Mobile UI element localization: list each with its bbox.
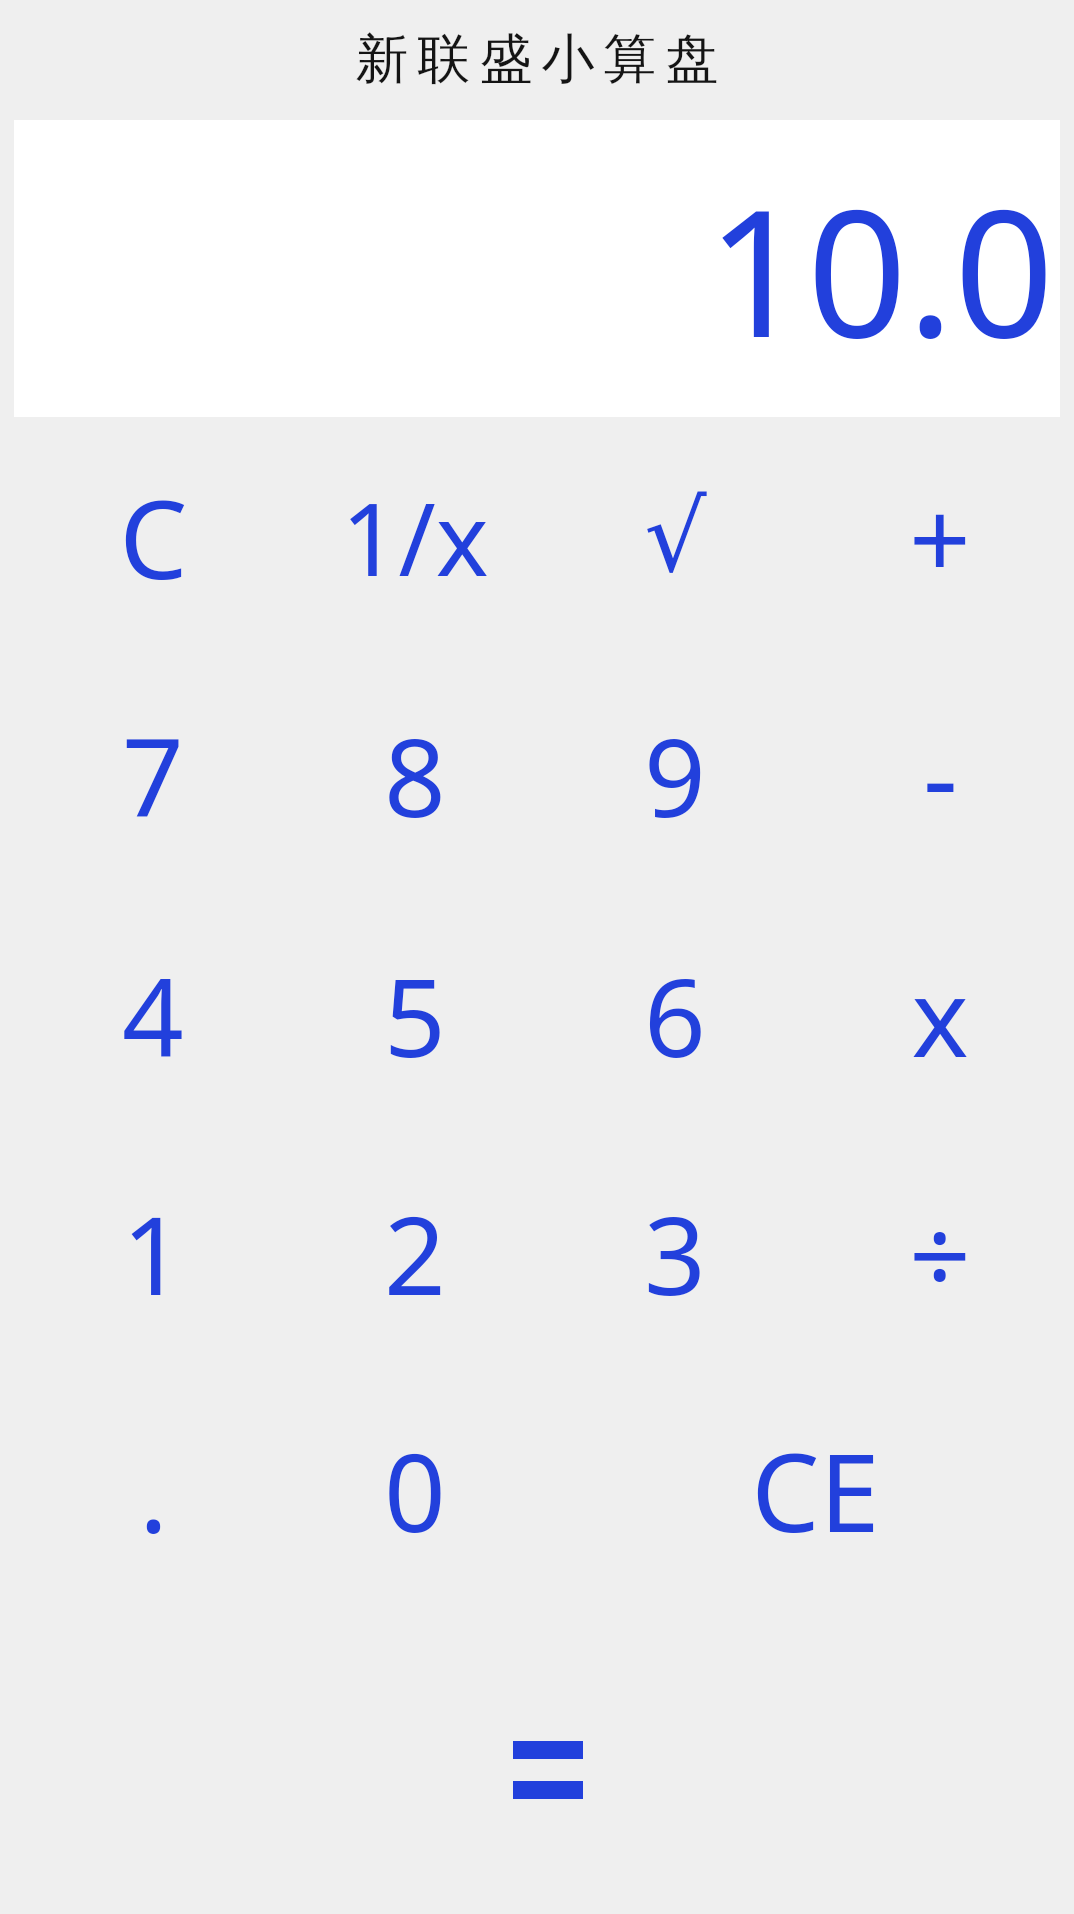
staticText: ÷ (909, 1180, 971, 1327)
staticText: . (139, 1417, 168, 1564)
staticText: 7 (122, 702, 184, 849)
button[interactable]: x (835, 915, 1045, 1115)
staticText: √ (644, 480, 707, 594)
staticText: 3 (644, 1180, 706, 1327)
button[interactable]: CE (700, 1390, 930, 1590)
button[interactable]: - (835, 675, 1045, 875)
staticText: CE (751, 1417, 880, 1564)
staticText: - (923, 702, 958, 849)
button[interactable]: Display (14, 120, 1060, 417)
button[interactable]: 6 (570, 915, 780, 1115)
button[interactable]: 4 (48, 915, 258, 1115)
button[interactable]: 9 (570, 675, 780, 875)
button[interactable]: ÷ (835, 1153, 1045, 1353)
button[interactable]: Equals (448, 1675, 648, 1865)
button[interactable]: 5 (310, 915, 520, 1115)
button[interactable]: 8 (310, 675, 520, 875)
button[interactable]: √ (570, 437, 780, 637)
button[interactable]: 7 (48, 675, 258, 875)
staticText: + (909, 464, 971, 611)
staticText: 5 (384, 942, 446, 1089)
button[interactable]: 3 (570, 1153, 780, 1353)
button[interactable]: 1 (48, 1153, 258, 1353)
staticText: 0 (384, 1417, 446, 1564)
button[interactable]: 0 (310, 1390, 520, 1590)
staticText: 6 (644, 942, 706, 1089)
button[interactable]: . (48, 1390, 258, 1590)
staticText: C (119, 464, 188, 611)
staticText: 8 (384, 702, 446, 849)
staticText: 1 (122, 1180, 184, 1327)
staticText: 10.0 (706, 150, 1054, 388)
staticText: 1/x (341, 469, 489, 605)
button[interactable]: 1/x (310, 437, 520, 637)
button[interactable]: 2 (310, 1153, 520, 1353)
staticText: 新联盛小算盘 (351, 26, 723, 93)
staticText: x (911, 942, 969, 1089)
staticText: 2 (384, 1180, 446, 1327)
button[interactable]: C (48, 437, 258, 637)
staticText: 9 (644, 702, 706, 849)
staticText: 4 (122, 942, 184, 1089)
button[interactable]: + (835, 437, 1045, 637)
